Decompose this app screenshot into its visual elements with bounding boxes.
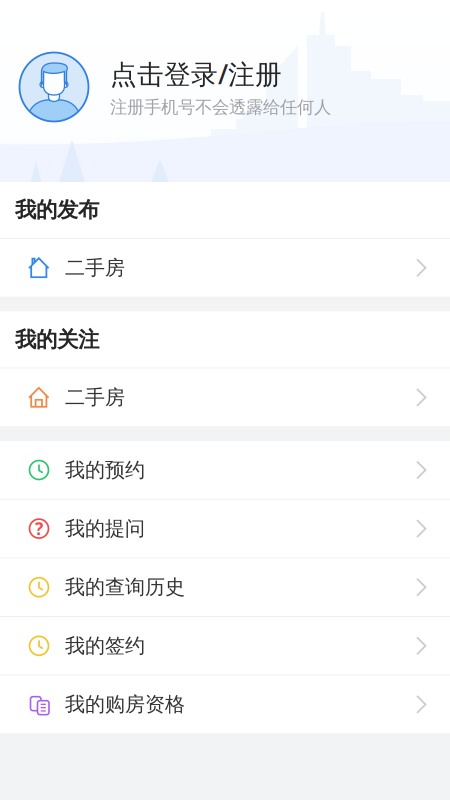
staticText: 注册手机号不会透露给任何人: [110, 97, 331, 118]
button[interactable]: 二手房: [0, 239, 450, 297]
staticText: 我的提问: [65, 516, 145, 541]
staticText: 我的查询历史: [65, 575, 185, 599]
button[interactable]: ?: [0, 500, 450, 557]
button[interactable]: 我的预约: [0, 441, 450, 499]
button[interactable]: 二手房: [0, 369, 450, 426]
staticText: 我的发布: [15, 197, 99, 223]
button[interactable]: 我的查询历史: [0, 558, 450, 616]
staticText: 点击登录/注册: [110, 56, 282, 91]
button[interactable]: 点击登录/注册: [0, 0, 450, 182]
staticText: 我的购房资格: [65, 692, 185, 717]
staticText: 二手房: [65, 385, 125, 410]
staticText: 二手房: [65, 255, 125, 280]
button[interactable]: 我的签约: [0, 617, 450, 675]
button[interactable]: 我的购房资格: [0, 676, 450, 733]
staticText: 我的预约: [65, 458, 145, 482]
staticText: 我的签约: [65, 633, 145, 658]
staticText: 我的关注: [15, 326, 99, 353]
staticText: ?: [35, 517, 43, 540]
